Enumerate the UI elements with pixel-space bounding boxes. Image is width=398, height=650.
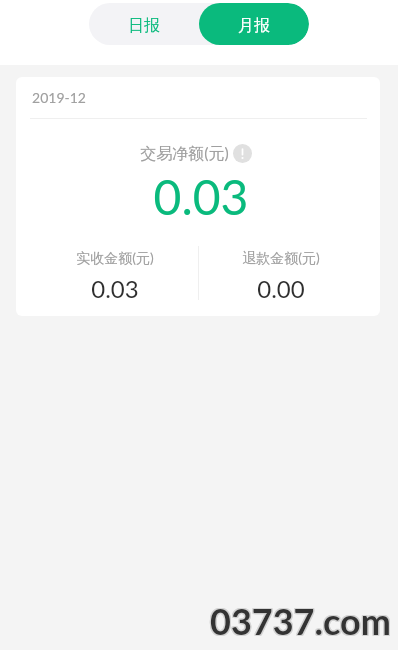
staticText: 03737.com [209, 598, 390, 641]
staticText: 03737.com [210, 599, 391, 642]
staticText: 03737.com [211, 599, 392, 642]
staticText: 0.03 [91, 274, 139, 303]
staticText: 2019-12 [32, 89, 86, 106]
button[interactable]: 说明 [233, 144, 252, 163]
staticText: 0.03 [19, 168, 380, 226]
staticText: 03737.com [211, 598, 392, 641]
staticText: 退款金额(元) [242, 249, 320, 267]
staticText: 03737.com [209, 599, 390, 642]
staticText: 0.00 [257, 274, 305, 303]
staticText: 03737.com [210, 600, 391, 643]
staticText: 03737.com [211, 600, 392, 643]
staticText: 03737.com [210, 598, 391, 641]
staticText: 月报 [238, 16, 270, 36]
staticText: 日报 [128, 16, 160, 36]
staticText: 实收金额(元) [76, 249, 154, 267]
staticText: 03737.com [209, 600, 390, 643]
staticText: 交易净额(元) [140, 143, 229, 164]
button[interactable]: 月报 [199, 3, 309, 45]
button[interactable]: 日报 [89, 3, 199, 45]
